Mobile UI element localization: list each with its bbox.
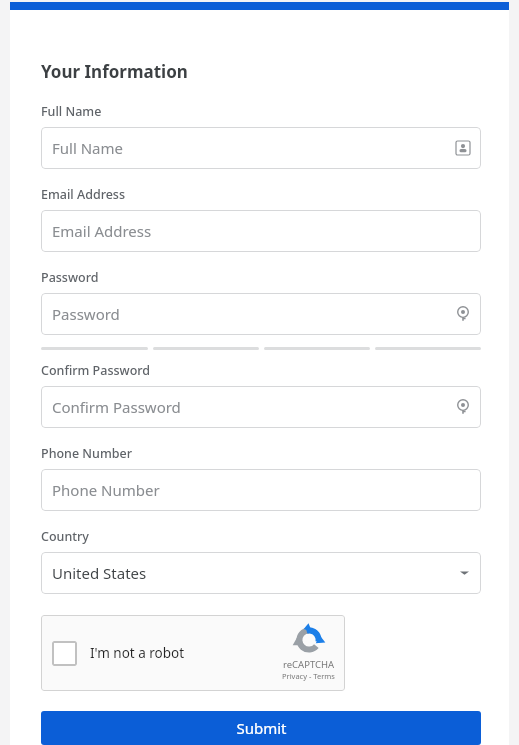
staticText: Full Name [41, 103, 102, 120]
staticText: Submit [236, 718, 287, 738]
button[interactable]: I'm not a robot [41, 615, 345, 691]
staticText: reCAPTCHA [283, 658, 335, 671]
staticText: Password [41, 269, 99, 286]
button[interactable]: Full Name [41, 127, 481, 169]
staticText: Your Information [41, 60, 188, 83]
button[interactable]: Submit [41, 711, 481, 745]
other: Password key [455, 399, 471, 415]
button[interactable]: Confirm Password [41, 386, 481, 428]
other: Password key [455, 306, 471, 322]
staticText: Full Name [52, 138, 123, 158]
staticText: Email Address [52, 221, 152, 241]
other: Autofill contact [456, 141, 470, 155]
staticText: Confirm Password [52, 397, 181, 417]
staticText: United States [52, 563, 147, 583]
staticText: Country [41, 528, 89, 545]
other: reCAPTCHA logo [294, 625, 324, 655]
staticText: Confirm Password [41, 362, 151, 379]
button[interactable]: Email Address [41, 210, 481, 252]
staticText: Phone Number [52, 480, 160, 500]
staticText: Password [52, 304, 120, 324]
button[interactable]: United States [41, 552, 481, 594]
staticText: Phone Number [41, 445, 132, 462]
button[interactable]: Phone Number [41, 469, 481, 511]
staticText: Email Address [41, 186, 126, 203]
staticText: I'm not a robot [90, 644, 185, 662]
button[interactable]: Password [41, 293, 481, 335]
staticText: Privacy - Terms [282, 671, 335, 681]
